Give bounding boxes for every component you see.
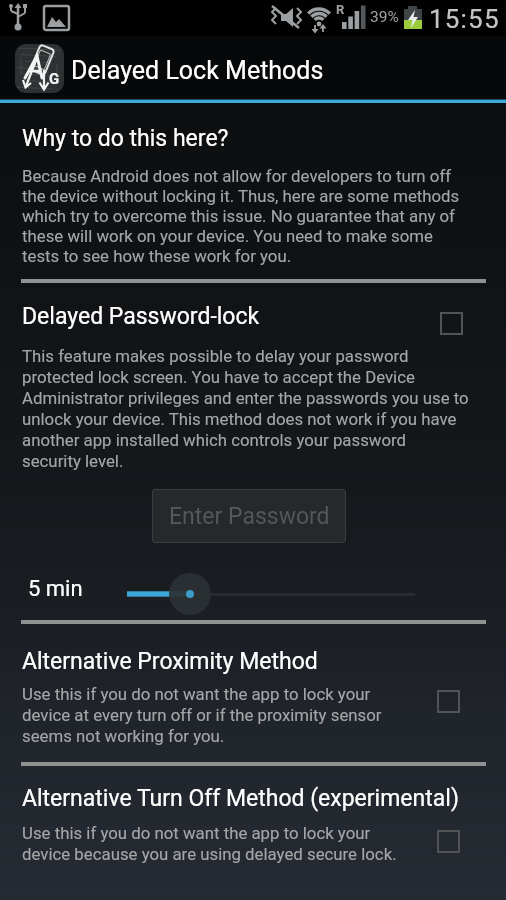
button[interactable]	[440, 312, 463, 335]
button[interactable]: G	[15, 44, 64, 93]
button[interactable]: Enter Password	[152, 489, 346, 543]
staticText: R	[336, 2, 345, 17]
staticText: Delayed Password-lock	[22, 303, 260, 330]
staticText: Use this if you do not want the app to l…	[22, 823, 397, 864]
staticText: Enter Password	[169, 503, 330, 530]
button[interactable]	[112, 569, 442, 619]
staticText: This feature makes possible to delay you…	[22, 346, 469, 471]
staticText: Why to do this here?	[22, 125, 229, 152]
staticText: G	[49, 70, 60, 88]
staticText: Use this if you do not want the app to l…	[22, 684, 382, 746]
staticText: 39%	[370, 8, 399, 26]
button[interactable]	[437, 830, 460, 853]
staticText: Delayed Lock Methods	[71, 56, 324, 85]
staticText: Alternative Proximity Method	[22, 648, 318, 675]
staticText: Alternative Turn Off Method (experimenta…	[22, 785, 459, 812]
staticText: 5 min	[28, 576, 83, 602]
button[interactable]	[437, 690, 460, 713]
staticText: 15:55	[429, 4, 500, 34]
staticText: Because Android does not allow for devel…	[22, 166, 460, 266]
